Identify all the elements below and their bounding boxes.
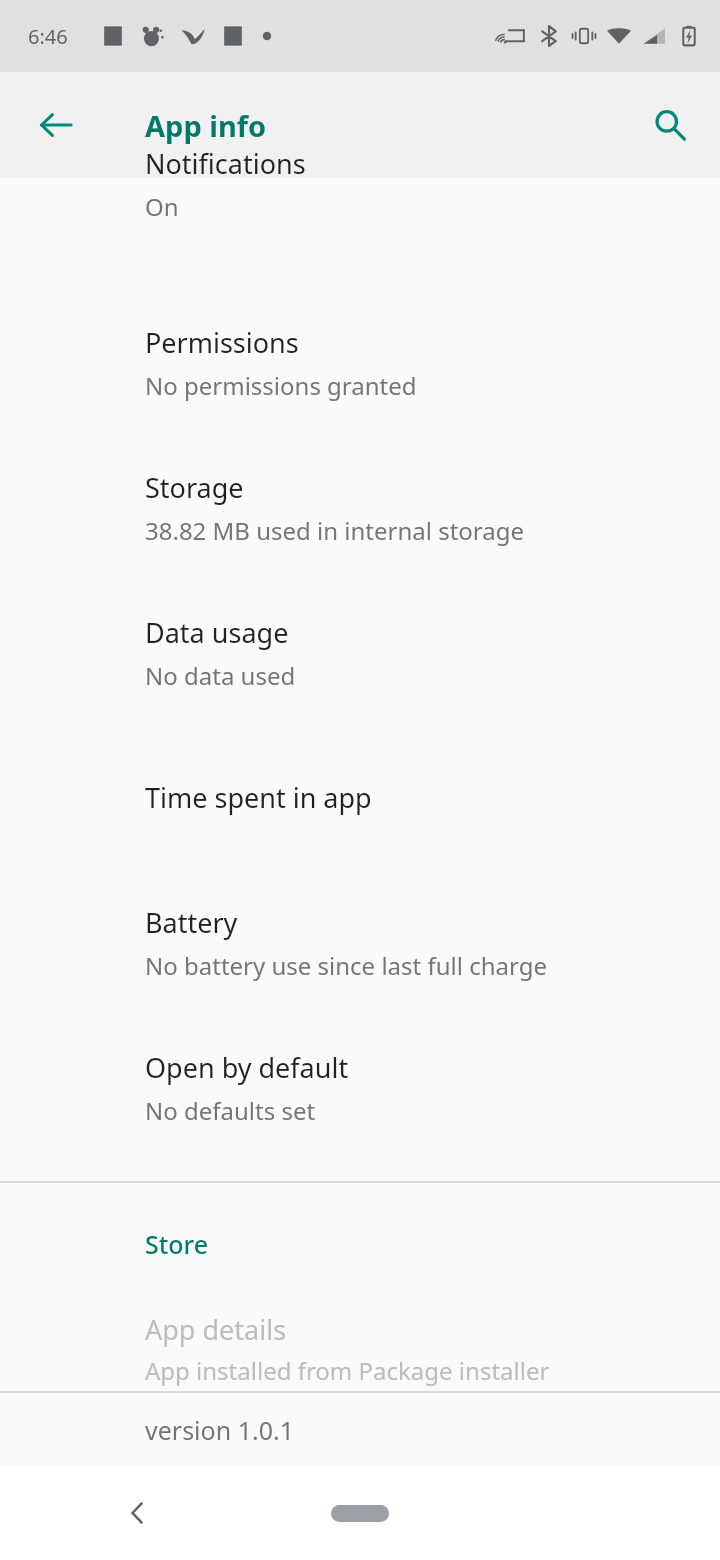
staticText: Store [145,1227,209,1261]
button[interactable]: Time spent in app [0,725,720,870]
button[interactable]: Store [0,1221,720,1267]
staticText: No permissions granted [145,369,417,402]
button[interactable]: Data usage [0,580,720,725]
staticText: Data usage [145,614,289,651]
staticText: No battery use since last full charge [145,949,547,982]
button[interactable]: Storage [0,435,720,580]
staticText: 38.82 MB used in internal storage [145,514,525,547]
staticText: Notifications [145,145,306,182]
staticText: Storage [145,469,244,506]
button[interactable]: Home [300,1483,420,1543]
staticText: App details [145,1311,287,1348]
staticText: version 1.0.1 [145,1413,294,1447]
staticText: No data used [145,659,296,692]
staticText: Time spent in app [145,779,372,816]
button[interactable]: Navigate up [20,89,92,161]
staticText: No defaults set [145,1094,316,1127]
button[interactable]: Search [634,89,706,161]
button[interactable]: App details [0,1307,720,1391]
button[interactable]: Notifications [0,178,720,290]
staticText: App info [145,106,267,145]
button[interactable]: Open by default [0,1015,720,1160]
button[interactable]: Permissions [0,290,720,435]
staticText: Open by default [145,1049,349,1086]
staticText: Permissions [145,324,299,361]
button[interactable]: Back [104,1479,172,1547]
staticText: On [145,190,179,223]
staticText: 6:46 [28,23,68,50]
staticText: Battery [145,904,238,941]
staticText: App installed from Package installer [145,1354,550,1387]
button[interactable]: Battery [0,870,720,1015]
